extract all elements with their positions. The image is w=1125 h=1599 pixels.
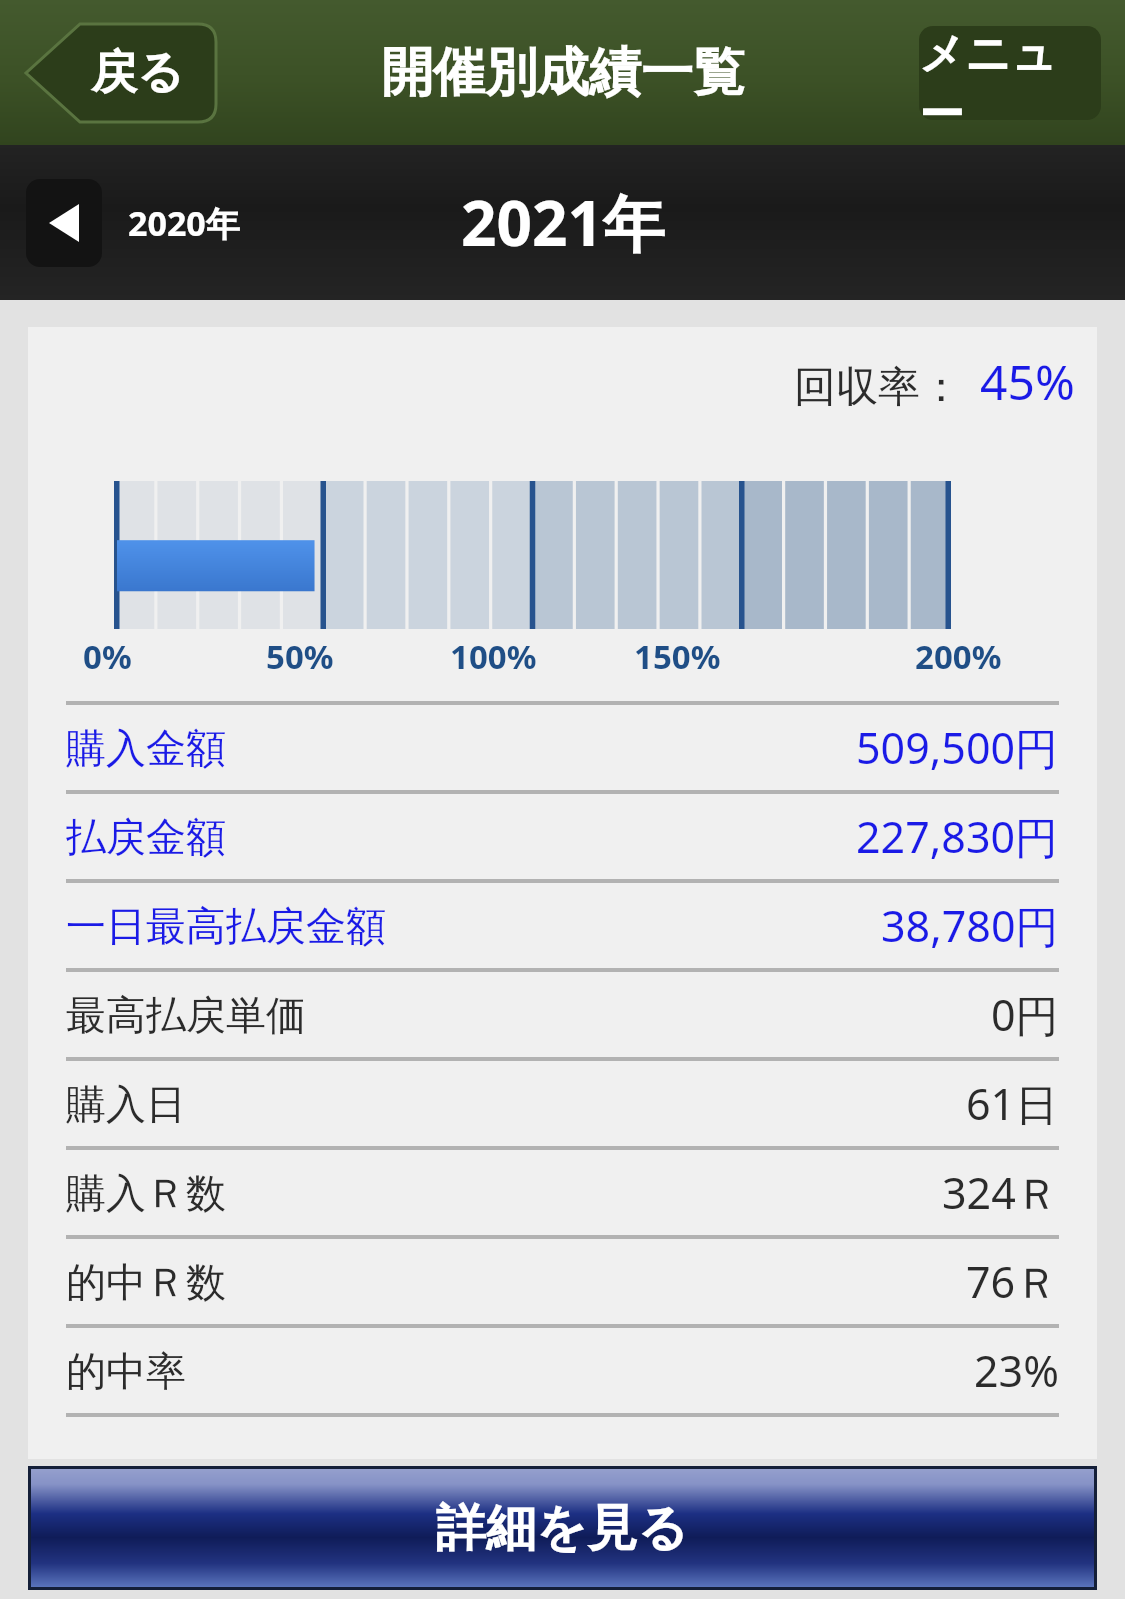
staticText: 的中Ｒ数 bbox=[66, 1257, 226, 1307]
staticText: 61日 bbox=[966, 1074, 1059, 1133]
staticText: 戻る bbox=[91, 44, 185, 102]
staticText: 0円 bbox=[991, 985, 1059, 1044]
staticText: 2020年 bbox=[128, 200, 240, 246]
button[interactable]: 詳細を見る bbox=[31, 1469, 1094, 1587]
staticText: 購入日 bbox=[66, 1079, 186, 1129]
button[interactable]: 的中率 bbox=[66, 1328, 1059, 1413]
staticText: 23% bbox=[974, 1341, 1059, 1400]
staticText: 76Ｒ bbox=[966, 1252, 1059, 1311]
staticText: 0% bbox=[83, 634, 132, 679]
staticText: 509,500円 bbox=[856, 718, 1059, 777]
staticText: 的中率 bbox=[66, 1346, 186, 1396]
staticText: 回収率： bbox=[794, 361, 962, 414]
staticText: 100% bbox=[450, 634, 537, 679]
staticText: 購入Ｒ数 bbox=[66, 1168, 226, 1218]
button[interactable]: 払戻金額 bbox=[66, 794, 1059, 879]
staticText: 最高払戻単価 bbox=[66, 990, 306, 1040]
staticText: 200% bbox=[915, 634, 1002, 679]
button[interactable]: 最高払戻単価 bbox=[66, 972, 1059, 1057]
button[interactable]: 戻る bbox=[24, 24, 216, 122]
staticText: 50% bbox=[266, 634, 334, 679]
staticText: 一日最高払戻金額 bbox=[66, 901, 386, 951]
button[interactable]: 的中Ｒ数 bbox=[66, 1239, 1059, 1324]
button[interactable]: 購入日 bbox=[66, 1061, 1059, 1146]
staticText: 150% bbox=[634, 634, 721, 679]
staticText: 227,830円 bbox=[856, 807, 1059, 866]
staticText: 2021年 bbox=[461, 180, 665, 265]
staticText: 払戻金額 bbox=[66, 812, 226, 862]
button[interactable]: メニュー bbox=[919, 26, 1101, 120]
button[interactable]: 前年へ bbox=[26, 179, 102, 267]
staticText: 購入金額 bbox=[66, 723, 226, 773]
staticText: 45% bbox=[980, 349, 1075, 414]
button[interactable]: 購入金額 bbox=[66, 705, 1059, 790]
staticText: メニュー bbox=[919, 26, 1101, 120]
button[interactable]: 一日最高払戻金額 bbox=[66, 883, 1059, 968]
staticText: 詳細を見る bbox=[436, 1497, 689, 1560]
staticText: 開催別成績一覧 bbox=[381, 40, 745, 106]
staticText: 324Ｒ bbox=[942, 1163, 1059, 1222]
staticText: 38,780円 bbox=[881, 896, 1059, 955]
button[interactable]: 購入Ｒ数 bbox=[66, 1150, 1059, 1235]
